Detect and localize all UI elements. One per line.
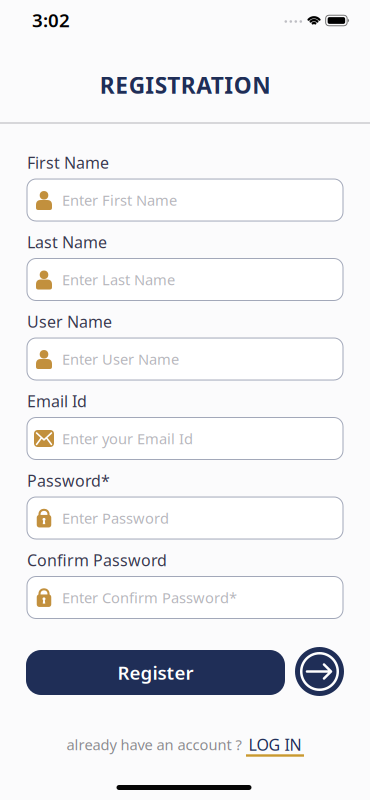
button[interactable]: Enter User Name bbox=[27, 338, 343, 380]
staticText: Enter your Email Id bbox=[62, 429, 193, 448]
staticText: LOG IN bbox=[248, 734, 301, 755]
staticText: Enter Confirm Password* bbox=[62, 588, 237, 607]
staticText: Enter Last Name bbox=[62, 270, 175, 289]
button[interactable]: Register bbox=[295, 647, 344, 696]
button[interactable]: Enter Password bbox=[27, 497, 343, 539]
staticText: User Name bbox=[27, 311, 112, 332]
button[interactable]: Enter First Name bbox=[27, 179, 343, 221]
button[interactable]: Enter Confirm Password* bbox=[27, 576, 343, 618]
staticText: Enter First Name bbox=[62, 190, 177, 210]
button[interactable]: Enter your Email Id bbox=[27, 417, 343, 459]
staticText: 3:02 bbox=[32, 8, 70, 32]
staticText: REGISTRATION bbox=[100, 70, 270, 100]
staticText: Last Name bbox=[27, 231, 107, 253]
staticText: Confirm Password bbox=[27, 549, 167, 571]
staticText: Register bbox=[117, 660, 193, 685]
staticText: Password* bbox=[27, 470, 110, 491]
staticText: Enter Password bbox=[62, 508, 169, 528]
staticText: already have an account ? bbox=[66, 735, 241, 754]
button[interactable]: Register bbox=[26, 650, 285, 695]
staticText: First Name bbox=[27, 152, 109, 173]
staticText: Email Id bbox=[27, 390, 87, 412]
button[interactable]: LOG IN bbox=[248, 734, 301, 755]
button[interactable]: Enter Last Name bbox=[27, 258, 343, 300]
staticText: Enter User Name bbox=[62, 349, 179, 369]
